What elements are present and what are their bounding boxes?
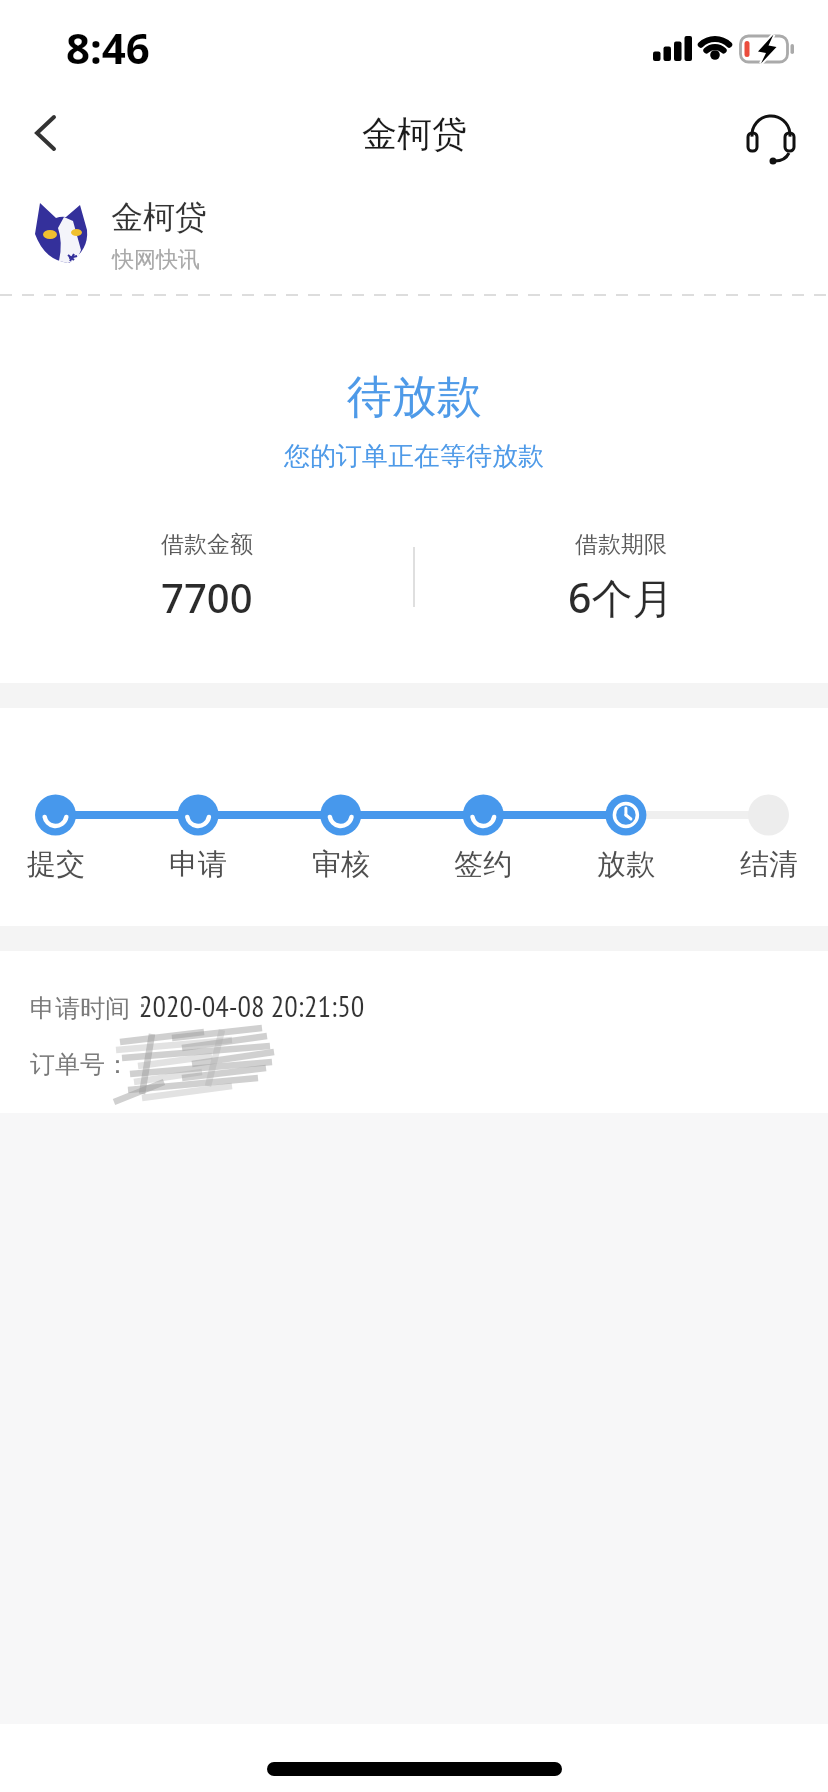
staticText: 待放款 xyxy=(347,369,482,426)
staticText: 审核 xyxy=(312,846,370,883)
staticText: 放款 xyxy=(597,846,655,883)
staticText: 2020-04-08 20:21:50 xyxy=(139,986,365,1025)
staticText: 您的订单正在等待放款 xyxy=(284,440,544,473)
staticText: 8:46 xyxy=(66,19,150,76)
staticText: 借款金额 xyxy=(161,530,253,559)
staticText: 快网快讯 xyxy=(112,246,200,274)
staticText: 申请 xyxy=(169,846,227,883)
staticText: 金柯贷 xyxy=(362,112,467,156)
button[interactable] xyxy=(16,105,72,161)
staticText: 金柯贷 xyxy=(111,197,207,237)
button[interactable] xyxy=(740,103,802,165)
button[interactable] xyxy=(0,180,828,290)
staticText: 申请时间： xyxy=(30,993,155,1024)
staticText: 结清 xyxy=(740,846,798,883)
staticText: 订单号： xyxy=(30,1049,130,1080)
staticText: 提交 xyxy=(27,846,85,883)
staticText: 借款期限 xyxy=(575,530,667,559)
staticText: 签约 xyxy=(454,846,512,883)
staticText: 6个月 xyxy=(568,569,674,625)
staticText: 7700 xyxy=(161,570,253,624)
